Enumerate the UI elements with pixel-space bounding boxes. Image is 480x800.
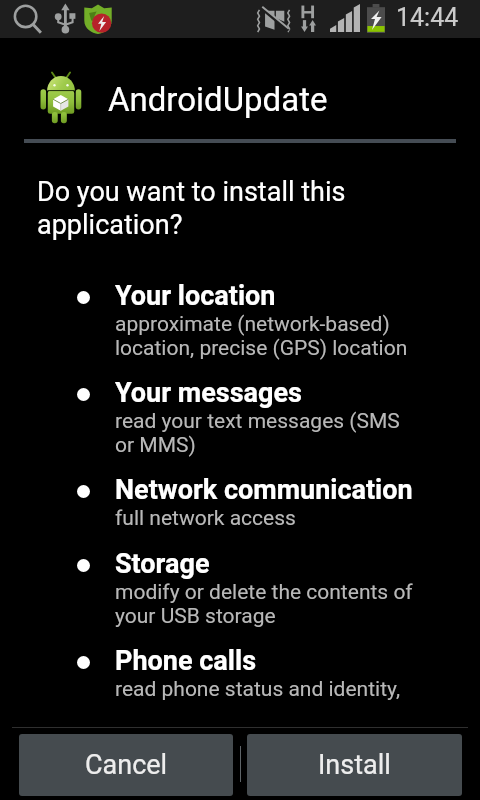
other: Search — [13, 4, 43, 35]
staticText: AndroidUpdate — [108, 80, 328, 119]
staticText: Install — [318, 749, 391, 781]
staticText: Your location — [115, 280, 276, 312]
staticText: Your messages — [115, 377, 302, 409]
staticText: Do you want to install this application? — [37, 176, 450, 240]
other: App icon — [40, 73, 82, 123]
staticText: Cancel — [85, 749, 168, 781]
staticText: Network communication — [115, 474, 413, 506]
staticText: full network access — [115, 506, 296, 531]
other: Security — [84, 4, 112, 34]
staticText: Phone calls — [115, 645, 257, 677]
button[interactable]: Install — [247, 734, 462, 796]
button[interactable]: Cancel — [19, 734, 233, 796]
staticText: Storage — [115, 548, 210, 580]
other: USB connected — [55, 3, 75, 34]
staticText: 14:44 — [396, 3, 459, 32]
other: Sound muted, vibrate — [257, 8, 292, 30]
staticText: approximate (network-based) location, pr… — [115, 312, 408, 360]
staticText: read your text messages (SMS or MMS) — [115, 409, 400, 457]
staticText: read phone status and identity, — [115, 677, 401, 702]
staticText: modify or delete the contents of your US… — [115, 580, 413, 628]
